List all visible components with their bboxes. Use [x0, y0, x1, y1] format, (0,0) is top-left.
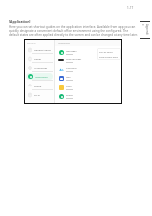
button[interactable]: Voice recorder: [58, 56, 121, 64]
staticText: Sound: [34, 84, 42, 87]
staticText: SETTING: [27, 42, 36, 45]
button[interactable]: Application: [26, 73, 53, 80]
button[interactable]: Phone: [58, 92, 121, 100]
staticText: Messages: [66, 50, 77, 53]
button[interactable]: Wi-Fi: [26, 91, 53, 98]
button[interactable]: Tablet: [26, 55, 53, 62]
staticText: Clock: [66, 85, 72, 88]
staticText: Calculator: [66, 67, 77, 70]
button[interactable]: Messages: [58, 48, 121, 56]
staticText: 1-17: [127, 6, 134, 10]
staticText: Here you can set shortcut guides on the …: [9, 25, 138, 37]
button[interactable]: Accessories: [26, 64, 53, 71]
staticText: General Memo: [34, 48, 51, 51]
staticText: Tablet: [34, 57, 41, 60]
staticText: Application: [35, 75, 48, 78]
staticText: Voice recorder: [66, 58, 82, 61]
staticText: Applications: [58, 42, 71, 45]
staticText: [Application]: [9, 19, 31, 24]
staticText: Accessories: [34, 66, 48, 69]
button[interactable]: Clock: [58, 83, 121, 91]
button[interactable]: Sound: [26, 82, 53, 89]
staticText: Phone: [66, 94, 73, 97]
button[interactable]: Sort by name: [97, 48, 121, 60]
button[interactable]: Calculator: [58, 65, 121, 73]
staticText: Wi-Fi: [34, 93, 40, 96]
staticText: Show system apps: [99, 56, 118, 59]
staticText: Sort by name: [99, 51, 113, 54]
button[interactable]: General Memo: [26, 46, 53, 53]
staticText: Mail: [66, 76, 71, 79]
button[interactable]: Mail: [58, 74, 121, 82]
staticText: Appendix: [141, 24, 149, 36]
